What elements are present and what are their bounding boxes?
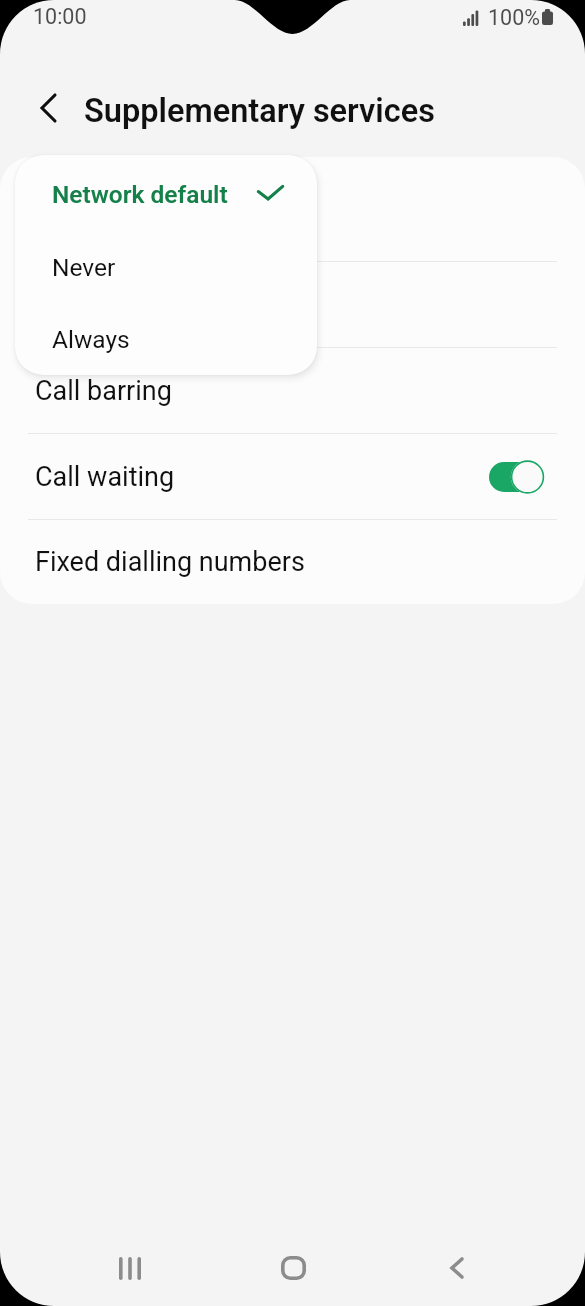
staticText: 100% bbox=[488, 5, 540, 30]
button[interactable]: Caller ID bbox=[0, 176, 585, 261]
button[interactable]: Network default bbox=[15, 160, 317, 229]
staticText: Call barring bbox=[35, 375, 172, 407]
staticText: Fixed dialling numbers bbox=[35, 546, 305, 578]
button[interactable]: Fixed dialling numbers bbox=[0, 520, 585, 604]
button[interactable]: Always bbox=[15, 305, 317, 374]
staticText: 10:00 bbox=[33, 4, 87, 29]
staticText: Never bbox=[52, 253, 116, 282]
button[interactable]: Navigate up bbox=[22, 82, 74, 134]
button[interactable]: Call forwarding bbox=[0, 262, 585, 347]
button[interactable]: Never bbox=[15, 233, 317, 302]
button[interactable]: Call waiting bbox=[0, 434, 585, 519]
staticText: Call waiting bbox=[35, 461, 175, 493]
staticText: Network default bbox=[52, 180, 228, 209]
button[interactable]: Call waiting toggle bbox=[489, 460, 544, 494]
button[interactable]: Recent apps bbox=[96, 1234, 164, 1302]
button[interactable]: Back bbox=[423, 1234, 491, 1302]
staticText: Supplementary services bbox=[84, 92, 435, 130]
button[interactable]: Home bbox=[259, 1234, 327, 1302]
button[interactable]: Call barring bbox=[0, 348, 585, 433]
staticText: Always bbox=[52, 325, 130, 354]
